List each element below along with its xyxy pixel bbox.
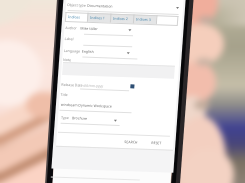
staticText: Note (61, 53, 75, 67)
staticText: dd.mm.yyyy (81, 73, 106, 98)
staticText: windream Dynamic Workspace (58, 77, 114, 133)
staticText: Release Date (59, 71, 86, 98)
staticText: Indices 2 (111, 8, 131, 28)
staticText: Author (63, 19, 80, 36)
button[interactable] (106, 2, 138, 34)
staticText: SEARCH (122, 132, 141, 151)
button[interactable] (118, 127, 148, 157)
button[interactable] (145, 129, 173, 157)
staticText: RESET (149, 135, 164, 150)
button[interactable]: Pick release date (128, 82, 136, 90)
staticText: Language (61, 40, 83, 62)
staticText: Mike töller (78, 17, 101, 40)
staticText: Title (58, 88, 70, 100)
staticText: Indices (66, 8, 83, 25)
button[interactable] (83, 2, 115, 34)
staticText: Type (59, 111, 72, 124)
staticText: Documentation (84, 0, 115, 21)
staticText: English (79, 43, 96, 60)
staticText: Indices 3 (134, 9, 154, 29)
staticText: Brochure (69, 107, 90, 128)
staticText: Indices 1 (88, 8, 108, 28)
staticText: Label (62, 32, 76, 46)
button[interactable] (129, 3, 161, 35)
button[interactable] (61, 1, 92, 32)
staticText: Object type (65, 0, 89, 17)
